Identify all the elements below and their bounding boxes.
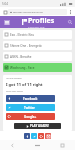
staticText: 5:04 xyxy=(2,2,8,6)
staticText: Exo - Electric Kiss xyxy=(10,33,34,37)
button[interactable]: Recent apps xyxy=(50,140,75,150)
button[interactable]: Wooheung - Face xyxy=(3,63,72,72)
button[interactable]: kgentlifes.com/quiz-gracias-rest xyxy=(8,9,67,15)
button[interactable]: Tabs xyxy=(2,9,8,15)
staticText: Wooheung - Face xyxy=(10,66,35,70)
button[interactable]: Back xyxy=(0,140,25,150)
button[interactable]: Home xyxy=(25,140,50,150)
button[interactable]: Exo - Electric Kiss xyxy=(3,30,72,39)
staticText: K-POP IDOL QUIZ xyxy=(28,26,45,28)
staticText: You are amazing xyxy=(6,77,22,80)
staticText: Shinee One - Energetic xyxy=(10,44,42,48)
button[interactable]: Share on Twitter xyxy=(31,133,37,139)
staticText: Twitter xyxy=(24,106,35,110)
button[interactable]: Share on Facebook xyxy=(24,133,30,139)
button[interactable]: Profiles xyxy=(22,16,55,28)
staticText: Share your results xyxy=(6,90,24,93)
button[interactable]: Share on Google Plus xyxy=(38,133,44,139)
button[interactable]: Twitter xyxy=(6,104,55,111)
staticText: Profiles xyxy=(28,16,55,26)
button[interactable]: Search xyxy=(64,16,75,28)
staticText: kgentlifes.com/quiz-gracias-rest xyxy=(13,11,44,14)
button[interactable]: More options xyxy=(67,9,73,15)
button[interactable]: Shinee One - Energetic xyxy=(3,41,72,50)
staticText: ASKN - Breathe xyxy=(10,55,32,59)
staticText: I got 11 of 11 right xyxy=(6,82,43,87)
button[interactable]: Google+ xyxy=(6,113,55,120)
staticText: PLAY AGAIN! xyxy=(30,124,49,128)
button[interactable]: PLAY AGAIN! xyxy=(14,123,61,129)
staticText: Facebook xyxy=(23,97,38,101)
button[interactable]: ASKN - Breathe xyxy=(3,52,72,61)
staticText: Google+ xyxy=(24,115,37,119)
button[interactable]: Menu xyxy=(0,16,13,28)
button[interactable]: Facebook xyxy=(6,95,55,102)
button[interactable]: Share by email xyxy=(45,133,51,139)
